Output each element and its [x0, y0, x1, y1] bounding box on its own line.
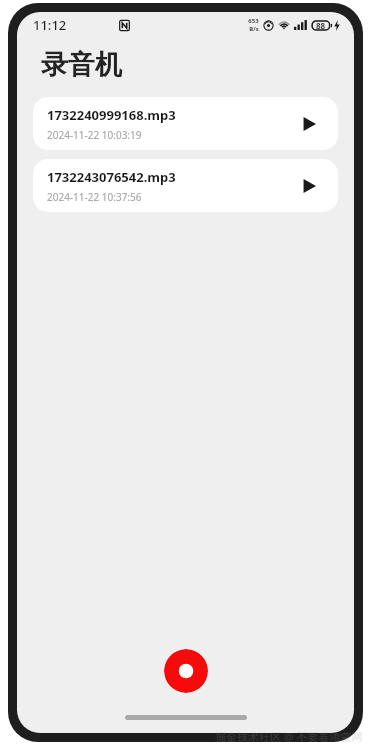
staticText: 1732243076542.mp3: [47, 168, 176, 186]
staticText: 1732240999168.mp3: [47, 106, 176, 124]
staticText: 11:12: [33, 16, 67, 34]
button[interactable]: Play recording: [296, 111, 322, 137]
button[interactable]: 1732243076542.mp3: [33, 159, 338, 212]
button[interactable]: 1732240999168.mp3: [33, 97, 338, 150]
staticText: 掘金技术社区 @ 不要卷鸿蒙网: [215, 729, 363, 744]
staticText: B/s: [249, 25, 259, 33]
button[interactable]: Play recording: [296, 173, 322, 199]
staticText: 2024-11-22 10:03:19: [47, 128, 142, 142]
staticText: 录音机: [41, 48, 122, 82]
staticText: 2024-11-22 10:37:56: [47, 190, 142, 204]
button[interactable]: Start recording: [164, 649, 208, 693]
staticText: 653: [248, 17, 259, 25]
staticText: 88: [316, 20, 326, 31]
